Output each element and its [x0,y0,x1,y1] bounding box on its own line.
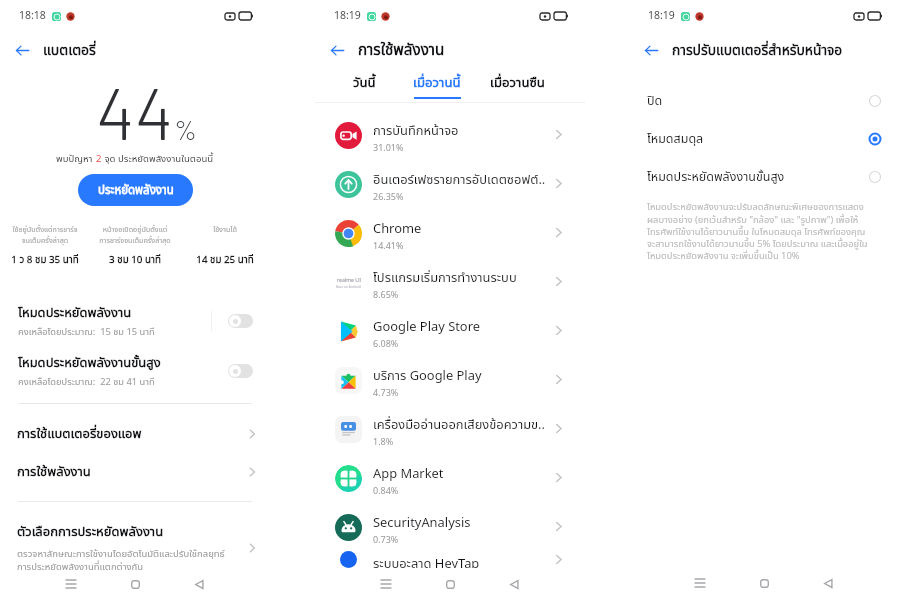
button[interactable]: ตัวเลือกการประหยัดพลังงาน [17,522,258,574]
button[interactable]: Home [438,572,462,596]
button[interactable]: Back [11,39,33,61]
button[interactable]: ระบบอะลาด HeyTap [334,551,565,568]
staticText: ตัวเลือกการประหยัดพลังงาน [17,522,164,542]
staticText: 8.65% [373,288,399,302]
staticText: 31.01% [373,141,404,155]
staticText: SecurityAnalysis [373,513,471,532]
staticText: 3 ชม 10 นาที [109,253,161,268]
button[interactable]: การบันทึกหน้าจอ [334,110,565,159]
staticText: 1 ว 8 ชม 35 นาที [11,253,79,268]
staticText: อินเตอร์เฟซรายการอัปเดตซอฟต์.. [373,170,546,189]
staticText: หน้าจอเปิดอยู่นับตั้งแต่ การชาร์จจนเต็มค… [99,224,171,247]
staticText: 14.41% [373,239,404,253]
button[interactable]: โหมดประหยัดพลังงานขั้นสูง [647,158,881,196]
staticText: โหมดประหยัดพลังงานจะปรับลดลักษณะพิเศษของ… [647,200,868,263]
staticText: พบปัญหา [56,152,96,167]
staticText: ปิด [647,92,869,111]
staticText: Google Play Store [373,317,481,336]
button[interactable]: Back [816,571,840,595]
staticText: ระบบอะลาด HeyTap [373,554,480,568]
staticText: % [174,113,198,145]
staticText: เครื่องมืออ่านออกเสียงข้อความข.. [373,415,546,434]
button[interactable]: การใช้แบตเตอรี่ของแอพ [17,414,258,454]
button[interactable]: การใช้พลังงาน [17,452,258,492]
staticText: บริการ Google Play [373,366,482,385]
button[interactable]: Google Play Store [334,306,565,355]
staticText: ใช้อยู่นับตั้งแต่การชาร์จ จนเต็มครั้งล่า… [12,224,78,247]
button[interactable]: Home [752,571,776,595]
button[interactable]: ปิด [647,82,881,120]
button[interactable]: Back [326,39,348,61]
button[interactable]: Back [502,572,526,596]
button[interactable]: Recent apps [688,571,712,595]
staticText: โหมดสมดุล [647,130,869,149]
button[interactable]: Chrome [334,208,565,257]
staticText: แบตเตอรี่ [43,40,96,61]
staticText: App Market [373,464,444,483]
staticText: 18:19 [648,8,675,24]
staticText: โหมดประหยัดพลังงานขั้นสูง [647,168,869,187]
staticText: 26.35% [373,190,404,204]
staticText: 2 [96,152,102,167]
staticText: ประหยัดพลังงาน [98,182,174,199]
staticText: 18:18 [19,8,46,24]
button[interactable]: เมื่อวานนี้ [404,68,470,99]
button[interactable]: โหมดประหยัดพลังงานขั้นสูง [18,353,253,389]
staticText: 18:19 [334,8,361,24]
staticText: วันนี้ [353,73,376,93]
staticText: โปรแกรมเริ่มการทำงานระบบ [373,268,517,287]
button[interactable]: อินเตอร์เฟซรายการอัปเดตซอฟต์.. [334,159,565,208]
button[interactable]: Back [640,39,662,61]
staticText: คงเหลือโดยประมาณ: 15 ชม 15 นาที [18,325,155,339]
button[interactable]: Back [187,572,211,596]
button[interactable]: ประหยัดพลังงาน [78,174,193,206]
staticText: 0.84% [373,484,399,498]
staticText: การใช้แบตเตอรี่ของแอพ [17,424,246,444]
button[interactable]: โหมดประหยัดพลังงาน [18,303,253,339]
staticText: realme UI [337,276,361,284]
button[interactable]: realme UI [334,257,565,306]
staticText: การปรับแบตเตอรี่สำหรับหน้าจอ [672,40,843,61]
button[interactable]: Recent apps [59,572,83,596]
button[interactable]: บริการ Google Play [334,355,565,404]
staticText: โหมดประหยัดพลังงานขั้นสูง [18,353,161,373]
staticText: ตรวจหาลักษณะการใช้งานโดยอัตโนมัติและปรับ… [17,547,225,574]
button[interactable]: SecurityAnalysis [334,502,565,551]
staticText: 4.73% [373,386,399,400]
staticText: การใช้พลังงาน [17,462,246,482]
staticText: Base on Android [336,285,361,290]
staticText: ใช้งานได้ [213,224,237,235]
staticText: การใช้พลังงาน [358,39,445,62]
button[interactable]: Recent apps [374,572,398,596]
staticText: เมื่อวานซืน [490,73,545,93]
button[interactable]: เครื่องมืออ่านออกเสียงข้อความข.. [334,404,565,453]
staticText: 14 ชม 25 นาที [196,253,254,268]
staticText: การบันทึกหน้าจอ [373,121,459,140]
staticText: คงเหลือโดยประมาณ: 22 ชม 41 นาที [18,375,155,389]
button[interactable]: App Market [334,453,565,502]
button[interactable]: Home [123,572,147,596]
button[interactable]: วันนี้ [332,68,397,99]
staticText: Chrome [373,219,422,238]
button[interactable]: เมื่อวานซืน [481,68,554,99]
staticText: โหมดประหยัดพลังงาน [18,303,132,323]
staticText: 6.08% [373,337,399,351]
staticText: 44 [96,68,174,154]
staticText: เมื่อวานนี้ [413,73,461,93]
button[interactable]: โหมดสมดุล [647,120,881,158]
staticText: 0.73% [373,533,399,547]
staticText: จุด ประหยัดพลังงานในตอนนี้ [102,152,214,167]
staticText: 1.8% [373,435,394,449]
